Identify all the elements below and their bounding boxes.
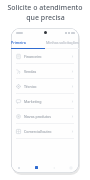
staticText: Marketing (24, 99, 42, 104)
button[interactable]: Primeira solicitação (11, 37, 45, 48)
staticText: Técnico (24, 84, 37, 89)
button[interactable]: Vendas (11, 64, 79, 79)
staticText: Minhas solicitações (46, 40, 79, 45)
button[interactable]: Menu (16, 165, 22, 171)
staticText: Primeira solicitação (11, 40, 45, 45)
button[interactable]: Técnico (11, 79, 79, 94)
staticText: Financeiro (24, 54, 42, 59)
button[interactable]: Home (33, 164, 40, 171)
staticText: Vendas (24, 69, 37, 74)
button[interactable]: Financeiro (11, 49, 79, 64)
button[interactable]: Novos produtos (11, 109, 79, 124)
button[interactable]: Marketing (11, 94, 79, 109)
staticText: que precisa (26, 13, 65, 23)
staticText: Solicite o atendimento (7, 3, 83, 13)
button[interactable]: Comercial/outro (11, 124, 79, 139)
staticText: Comercial/outro (24, 129, 52, 134)
staticText: Novos produtos (24, 114, 51, 119)
button[interactable]: Minhas solicitações (45, 37, 79, 48)
button[interactable]: Recents (68, 165, 74, 171)
